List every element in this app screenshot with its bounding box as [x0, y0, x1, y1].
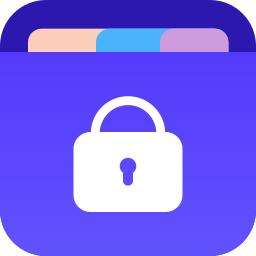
button[interactable]: Unlock vault — [70, 92, 186, 208]
button[interactable]: All passwords — [160, 29, 228, 52]
button[interactable]: Favourites — [96, 29, 160, 52]
button[interactable]: Recent items — [28, 29, 96, 52]
